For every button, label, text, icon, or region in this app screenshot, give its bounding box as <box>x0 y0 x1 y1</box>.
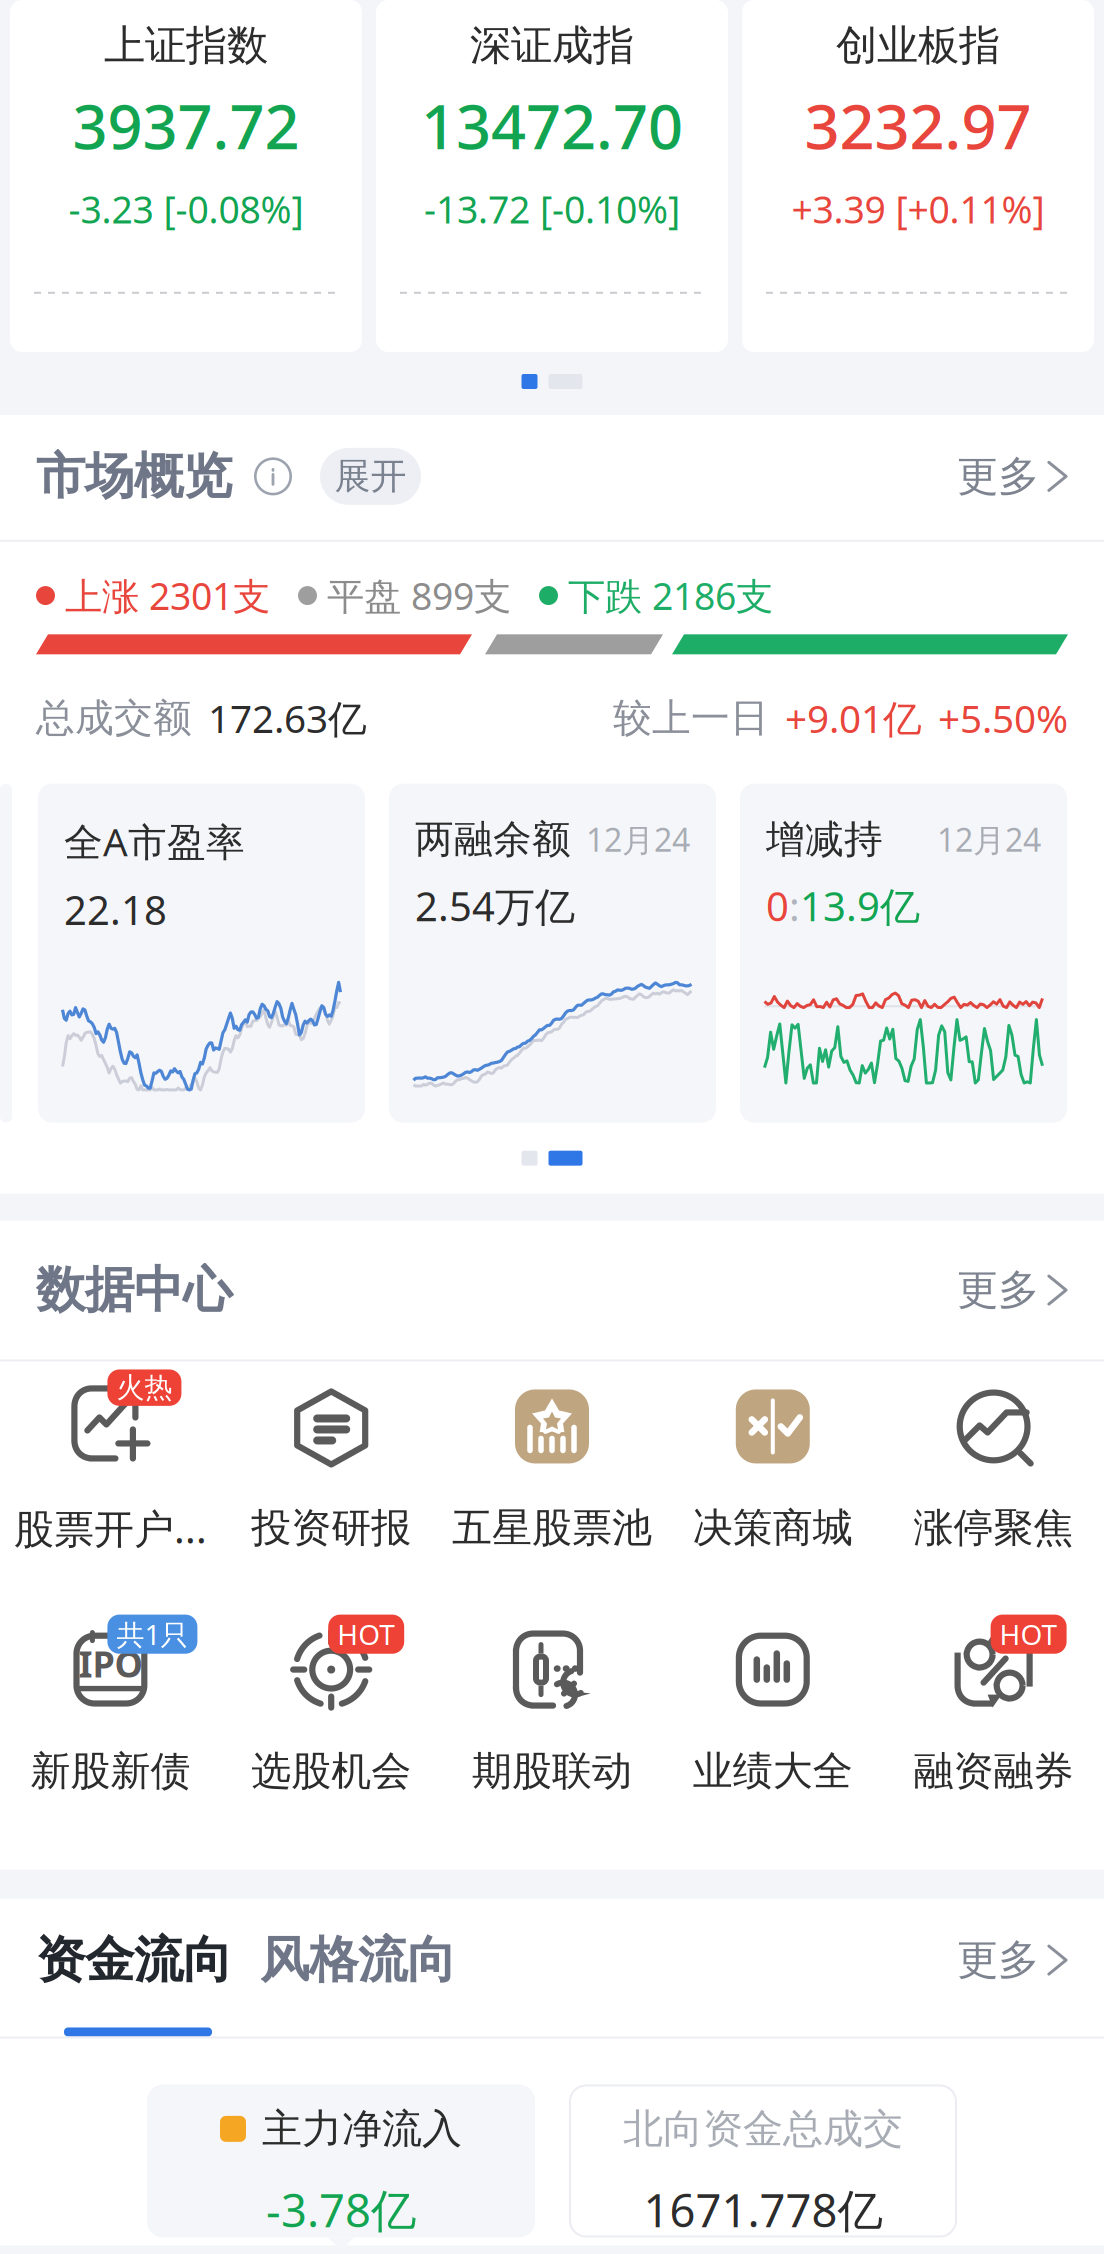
staticText: 新股新债 <box>30 1747 190 1796</box>
staticText: HOT <box>337 1616 395 1653</box>
staticText: 业绩大全 <box>693 1747 853 1796</box>
staticText: 火热 <box>116 1370 172 1405</box>
staticText: 主力净流入 <box>262 2104 462 2153</box>
staticText: 平盘 899支 <box>327 571 511 620</box>
staticText: 13.9亿 <box>800 879 920 932</box>
staticText: 13472.70 <box>421 85 683 166</box>
staticText: 融资融券 <box>914 1747 1074 1796</box>
staticText: 北向资金总成交 <box>623 2104 903 2153</box>
staticText: 更多 <box>957 1265 1039 1315</box>
staticText: 更多 <box>957 1935 1039 1985</box>
staticText: 展开 <box>334 454 406 498</box>
button[interactable]: 决策商城 <box>662 1379 883 1553</box>
staticText: 增减持 <box>766 816 883 863</box>
staticText: +9.01亿 <box>785 692 922 744</box>
staticText: HOT <box>1000 1616 1058 1653</box>
staticText: 3937.72 <box>72 85 299 166</box>
staticText: 12月24 <box>937 818 1041 861</box>
staticText: 决策商城 <box>693 1503 853 1553</box>
button[interactable]: 展开 <box>320 448 421 505</box>
staticText: 共1只 <box>116 1616 188 1653</box>
button[interactable]: 业绩大全 <box>662 1623 883 1796</box>
staticText: 期股联动 <box>472 1747 632 1796</box>
staticText: 12月24 <box>586 818 690 861</box>
button[interactable]: 上证指数 <box>10 0 362 352</box>
staticText: 172.63亿 <box>208 692 367 744</box>
button[interactable]: 风格流向 <box>260 1930 456 1990</box>
button[interactable]: 投资研报 <box>221 1379 442 1553</box>
button[interactable]: 两融余额 <box>389 784 716 1123</box>
staticText: 上证指数 <box>104 20 268 71</box>
staticText: 全A市盈率 <box>64 816 245 867</box>
staticText: 风格流向 <box>260 1930 456 1990</box>
button[interactable]: 更多 <box>957 1259 1068 1321</box>
button[interactable]: 增减持 <box>740 784 1067 1123</box>
staticText: 股票开户... <box>14 1501 207 1555</box>
button[interactable]: 涨停聚焦 <box>883 1379 1104 1553</box>
staticText: 数据中心 <box>36 1260 232 1320</box>
staticText: 深证成指 <box>470 20 634 71</box>
button[interactable]: 创业板指 <box>742 0 1094 352</box>
button[interactable]: HOT <box>883 1623 1104 1796</box>
staticText: 1671.778亿 <box>643 2179 882 2240</box>
staticText: 2.54万亿 <box>415 879 575 932</box>
button[interactable]: 主力净流入 <box>147 2084 535 2237</box>
button[interactable]: 五星股票池 <box>442 1379 662 1553</box>
staticText: 0 <box>766 879 789 932</box>
staticText: 涨停聚焦 <box>914 1503 1074 1553</box>
button[interactable]: 期股联动 <box>442 1623 662 1796</box>
button[interactable]: 火热 <box>0 1377 221 1555</box>
staticText: 两融余额 <box>415 816 571 863</box>
staticText: IPO <box>78 1640 142 1687</box>
staticText: +3.39 [+0.11%] <box>791 184 1044 234</box>
staticText: 更多 <box>957 451 1039 502</box>
staticText: 较上一日 <box>613 694 769 742</box>
button[interactable]: HOT <box>221 1623 442 1796</box>
staticText: 创业板指 <box>836 20 1000 71</box>
staticText: 市场概览 <box>36 446 232 507</box>
staticText: -3.78亿 <box>266 2179 416 2240</box>
staticText: -3.23 [-0.08%] <box>68 184 303 234</box>
staticText: +5.50% <box>938 692 1068 744</box>
button[interactable]: 更多 <box>957 1929 1068 1991</box>
staticText: : <box>789 879 800 932</box>
staticText: 22.18 <box>64 883 167 936</box>
button[interactable]: 北向资金总成交 <box>569 2084 957 2237</box>
staticText: 上涨 2301支 <box>65 571 270 620</box>
button[interactable]: IPO <box>0 1623 221 1796</box>
button[interactable]: 更多 <box>957 445 1068 508</box>
button[interactable]: 深证成指 <box>376 0 728 352</box>
staticText: 五星股票池 <box>452 1503 652 1553</box>
staticText: 总成交额 <box>36 694 192 742</box>
staticText: 3232.97 <box>804 85 1031 166</box>
staticText: 下跌 2186支 <box>568 571 773 620</box>
staticText: -13.72 [-0.10%] <box>424 184 680 234</box>
button[interactable]: 资金流向 <box>36 1930 232 1990</box>
staticText: 选股机会 <box>251 1747 411 1796</box>
button[interactable]: 全A市盈率 <box>38 784 365 1123</box>
staticText: 投资研报 <box>251 1503 411 1553</box>
staticText: 资金流向 <box>36 1930 232 1990</box>
